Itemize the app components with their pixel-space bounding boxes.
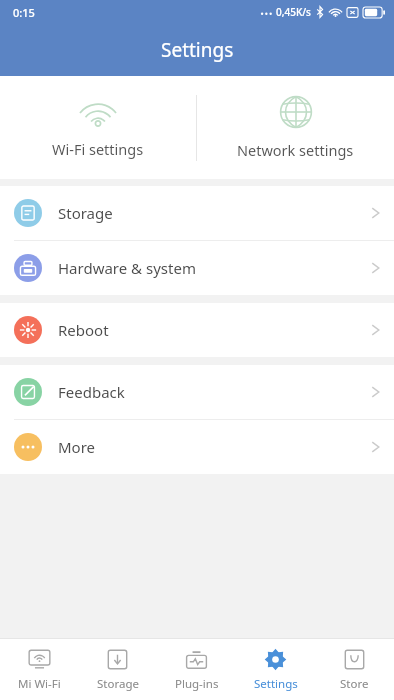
button[interactable]: Mi Wi-Fi [0,639,78,700]
staticText: More [58,437,371,457]
staticText: Settings [161,37,234,63]
staticText: Hardware & system [58,258,371,278]
button[interactable]: More [0,420,394,474]
staticText: Reboot [58,320,371,340]
staticText: Mi Wi-Fi [18,676,61,692]
button[interactable]: Wi-Fi settings [0,76,196,179]
staticText: Feedback [58,382,371,402]
staticText: Network settings [237,140,354,160]
button[interactable]: Storage [0,186,394,240]
button[interactable]: Settings [236,639,315,700]
button[interactable]: Storage [78,639,157,700]
staticText: 0:15 [13,5,35,20]
button[interactable]: Plug-ins [157,639,236,700]
staticText: Storage [97,676,139,692]
button[interactable]: Hardware & system [0,241,394,295]
staticText: Wi-Fi settings [52,139,144,159]
staticText: Storage [58,203,371,223]
button[interactable]: Reboot [0,303,394,357]
staticText: Store [340,676,369,692]
button[interactable]: Feedback [0,365,394,419]
button[interactable]: Store [315,639,394,700]
staticText: 0,45K/s [276,5,311,19]
staticText: Plug-ins [175,676,219,692]
staticText: Settings [254,676,298,692]
button[interactable]: Network settings [197,76,394,179]
